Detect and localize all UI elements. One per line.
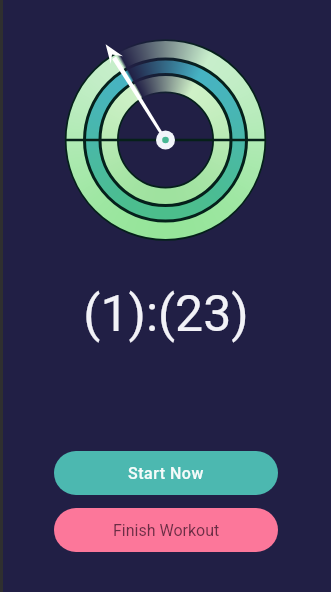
button[interactable]: Finish Workout: [54, 508, 278, 552]
staticText: (1):(23): [83, 285, 249, 344]
staticText: Finish Workout: [113, 521, 220, 540]
button[interactable]: Start Now: [54, 451, 278, 495]
staticText: Start Now: [128, 464, 204, 483]
